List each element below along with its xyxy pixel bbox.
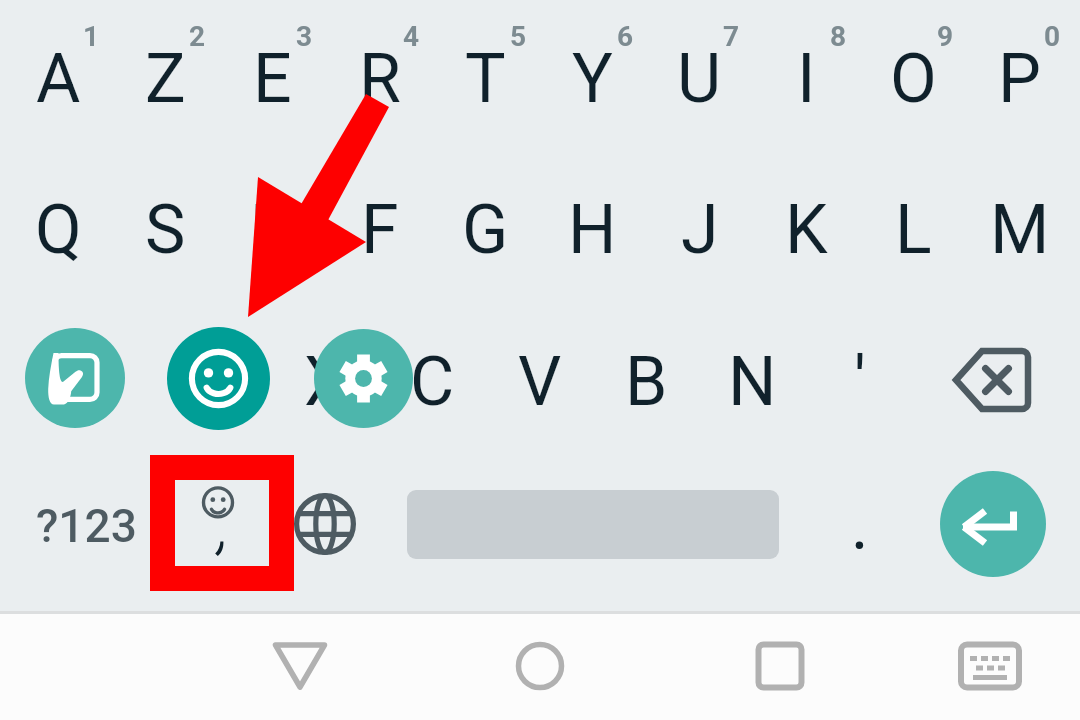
staticText: C	[410, 342, 455, 422]
button[interactable]: I	[753, 3, 860, 151]
staticText: P	[998, 39, 1041, 119]
staticText: G	[462, 190, 509, 270]
button[interactable]: L	[860, 154, 967, 302]
button[interactable]: U	[646, 3, 753, 151]
button[interactable]: Q	[5, 154, 112, 302]
button[interactable]: Tap gesture	[25, 328, 125, 428]
staticText: '	[854, 342, 866, 422]
staticText: V	[518, 342, 562, 422]
button[interactable]: S	[112, 154, 219, 302]
button[interactable]: K	[753, 154, 860, 302]
staticText: 0	[1044, 20, 1061, 53]
staticText: T	[465, 39, 506, 119]
button[interactable]: W	[165, 306, 272, 454]
staticText: 4	[403, 20, 420, 53]
staticText: 9	[937, 20, 954, 53]
staticText: 2	[189, 20, 206, 53]
staticText: R	[359, 39, 401, 119]
staticText: Q	[35, 190, 82, 270]
staticText: A	[36, 39, 81, 119]
button[interactable]: B	[593, 306, 700, 454]
staticText: N	[728, 342, 777, 422]
staticText: ?123	[36, 499, 137, 553]
staticText: 6	[617, 20, 634, 53]
staticText: U	[677, 39, 722, 119]
button[interactable]: Settings	[314, 329, 413, 428]
staticText: 1	[83, 20, 100, 53]
button[interactable]: V	[486, 306, 593, 454]
staticText: L	[895, 190, 932, 270]
staticText: X	[304, 342, 347, 422]
button[interactable]: R	[326, 3, 433, 151]
staticText: S	[145, 190, 186, 270]
button[interactable]: Change language	[275, 454, 375, 594]
staticText: K	[785, 190, 828, 270]
staticText: E	[253, 39, 292, 119]
button[interactable]: A	[5, 3, 112, 151]
button[interactable]	[162, 455, 282, 595]
button[interactable]	[809, 455, 909, 595]
button[interactable]: Back	[235, 613, 365, 719]
staticText: H	[568, 190, 617, 270]
staticText: Y	[572, 39, 613, 119]
button[interactable]: N	[699, 306, 806, 454]
button[interactable]: J	[646, 154, 753, 302]
button[interactable]: D	[219, 154, 326, 302]
button[interactable]: F	[326, 154, 433, 302]
button[interactable]: O	[860, 3, 967, 151]
staticText: M	[990, 190, 1050, 270]
button[interactable]: Backspace	[912, 306, 1072, 454]
button[interactable]: Home	[475, 613, 605, 719]
button[interactable]: Switch keyboard	[925, 613, 1055, 719]
staticText: D	[250, 190, 295, 270]
button[interactable]: Y	[539, 3, 646, 151]
button[interactable]: X	[272, 306, 379, 454]
button[interactable]: P	[966, 3, 1073, 151]
button[interactable]: E	[219, 3, 326, 151]
staticText: O	[890, 39, 937, 119]
staticText: B	[625, 342, 668, 422]
staticText: 7	[723, 20, 740, 53]
button[interactable]: M	[966, 154, 1073, 302]
button[interactable]: Recents	[715, 613, 845, 719]
staticText: 8	[830, 20, 847, 53]
button[interactable]: ?123	[16, 456, 156, 596]
button[interactable]: Enter	[940, 471, 1046, 577]
staticText: 5	[510, 20, 527, 53]
staticText: W	[188, 342, 249, 422]
button[interactable]: Shift	[5, 306, 165, 454]
staticText: 3	[296, 20, 313, 53]
button[interactable]: G	[432, 154, 539, 302]
button[interactable]: Z	[112, 3, 219, 151]
staticText: I	[797, 39, 816, 119]
button[interactable]: T	[432, 3, 539, 151]
staticText: J	[681, 190, 719, 270]
staticText: F	[361, 190, 399, 270]
staticText: Z	[145, 39, 186, 119]
button[interactable]: Emoji	[167, 327, 270, 430]
button[interactable]: '	[806, 306, 913, 454]
button[interactable]: H	[539, 154, 646, 302]
button[interactable]: C	[379, 306, 486, 454]
